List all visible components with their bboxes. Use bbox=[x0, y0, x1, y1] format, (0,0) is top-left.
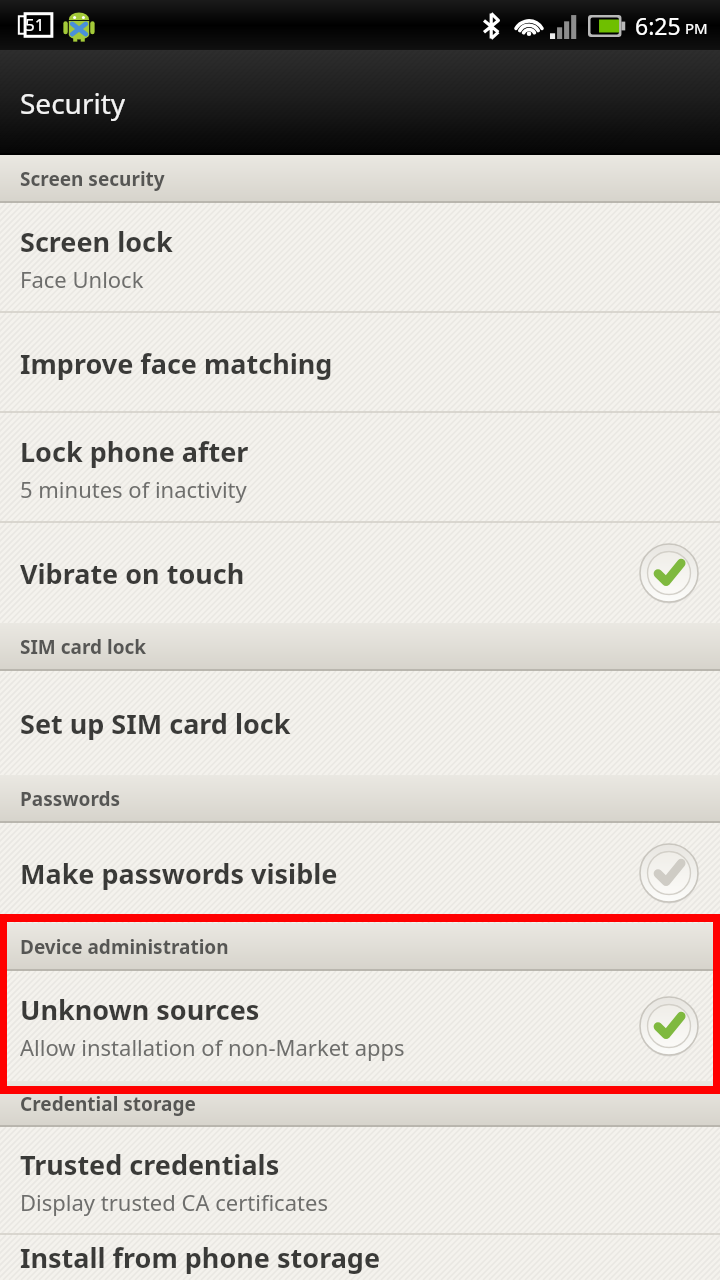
staticText: Security bbox=[20, 84, 126, 122]
staticText: Face Unlock bbox=[20, 264, 144, 294]
staticText: Display trusted CA certificates bbox=[20, 1187, 328, 1217]
staticText: Unknown sources bbox=[20, 991, 260, 1028]
staticText: PM bbox=[685, 18, 708, 38]
staticText: Improve face matching bbox=[20, 345, 333, 382]
staticText: Vibrate on touch bbox=[20, 555, 245, 592]
staticText: Device administration bbox=[20, 934, 229, 960]
button[interactable]: Set up SIM card lock bbox=[0, 671, 720, 775]
button[interactable]: Unknown sources bbox=[0, 971, 720, 1081]
staticText: Screen security bbox=[20, 166, 165, 192]
button[interactable]: Screen lock bbox=[0, 203, 720, 313]
staticText: 5 minutes of inactivity bbox=[20, 474, 247, 504]
button[interactable]: Lock phone after bbox=[0, 413, 720, 523]
staticText: Credential storage bbox=[20, 1091, 196, 1117]
staticText: Lock phone after bbox=[20, 433, 249, 470]
staticText: Make passwords visible bbox=[20, 855, 338, 892]
staticText: Allow installation of non-Market apps bbox=[20, 1032, 405, 1062]
button[interactable]: Improve face matching bbox=[0, 313, 720, 413]
staticText: Set up SIM card lock bbox=[20, 705, 291, 742]
button[interactable]: Make passwords visible bbox=[0, 823, 720, 923]
button[interactable]: Vibrate on touch bbox=[0, 523, 720, 623]
staticText: Passwords bbox=[20, 786, 121, 812]
staticText: 51 bbox=[25, 13, 45, 36]
staticText: Screen lock bbox=[20, 223, 173, 260]
staticText: Install from phone storage bbox=[20, 1239, 381, 1276]
button[interactable]: Trusted credentials bbox=[0, 1127, 720, 1235]
button[interactable]: Install from phone storage bbox=[0, 1235, 720, 1280]
staticText: SIM card lock bbox=[20, 634, 147, 660]
staticText: 6:25 bbox=[635, 10, 681, 41]
staticText: Trusted credentials bbox=[20, 1146, 280, 1183]
